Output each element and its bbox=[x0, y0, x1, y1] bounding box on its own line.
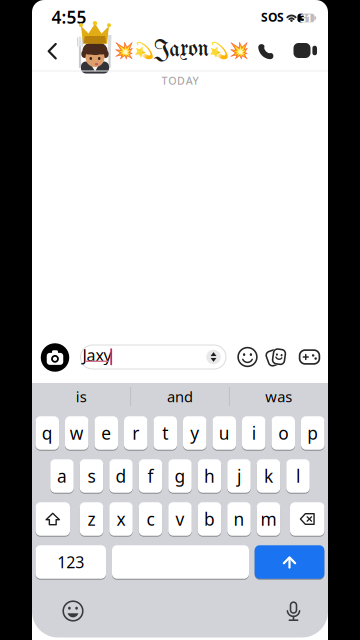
button[interactable]: r bbox=[124, 416, 147, 451]
staticText: and bbox=[167, 387, 193, 406]
button[interactable]: o bbox=[271, 416, 295, 451]
staticText: q bbox=[42, 421, 53, 444]
button[interactable]: Video call bbox=[293, 43, 317, 58]
button[interactable]: p bbox=[301, 416, 324, 451]
button[interactable]: j bbox=[227, 459, 251, 494]
button[interactable]: f bbox=[139, 459, 162, 494]
staticText: j bbox=[237, 464, 241, 487]
button[interactable]: h bbox=[198, 459, 221, 494]
button[interactable]: Emoji bbox=[62, 600, 83, 621]
staticText: 31 bbox=[300, 11, 312, 25]
staticText: p bbox=[307, 421, 318, 444]
staticText: a bbox=[57, 464, 67, 487]
button[interactable]: z bbox=[80, 502, 103, 537]
staticText: 123 bbox=[57, 551, 84, 573]
button[interactable]: More options bbox=[206, 350, 221, 364]
staticText: m bbox=[260, 507, 276, 530]
button[interactable]: y bbox=[183, 416, 206, 451]
button[interactable]: Dictation bbox=[287, 601, 300, 621]
staticText: v bbox=[175, 507, 184, 530]
button[interactable]: Profile bbox=[72, 21, 118, 72]
staticText: r bbox=[132, 421, 139, 444]
button[interactable]: Delete bbox=[290, 502, 324, 537]
button[interactable]: g bbox=[168, 459, 192, 494]
button[interactable]: t bbox=[153, 416, 177, 451]
staticText: Jaxy bbox=[82, 344, 111, 366]
staticText: 4:55 bbox=[51, 5, 86, 28]
button[interactable]: and bbox=[135, 383, 225, 409]
button[interactable]: Games bbox=[299, 349, 320, 365]
button[interactable]: a bbox=[50, 459, 74, 494]
staticText: e bbox=[101, 421, 111, 444]
staticText: 💥💫Jaxon💫💥 bbox=[113, 39, 248, 61]
staticText: was bbox=[265, 387, 292, 406]
button[interactable]: w bbox=[65, 416, 88, 451]
button[interactable]: Space bbox=[112, 545, 249, 580]
staticText: d bbox=[115, 464, 126, 487]
staticText: t bbox=[162, 421, 168, 444]
button[interactable]: Camera bbox=[41, 343, 69, 372]
staticText: h bbox=[204, 464, 215, 487]
button[interactable]: s bbox=[80, 459, 103, 494]
button[interactable]: Back bbox=[47, 43, 57, 60]
button[interactable]: n bbox=[227, 502, 251, 537]
button[interactable]: e bbox=[94, 416, 118, 451]
button[interactable]: u bbox=[212, 416, 236, 451]
staticText: c bbox=[146, 507, 154, 530]
button[interactable]: was bbox=[234, 383, 324, 409]
staticText: l bbox=[296, 464, 300, 487]
staticText: g bbox=[174, 464, 185, 487]
staticText: s bbox=[87, 464, 95, 487]
button[interactable]: m bbox=[257, 502, 280, 537]
button[interactable]: 123 bbox=[35, 545, 106, 580]
button[interactable]: l bbox=[286, 459, 310, 494]
staticText: u bbox=[219, 421, 230, 444]
button[interactable]: i bbox=[242, 416, 265, 451]
button[interactable]: Emoji bbox=[237, 347, 257, 367]
staticText: SOS bbox=[261, 9, 284, 25]
staticText: n bbox=[233, 507, 244, 530]
button[interactable]: Send bbox=[255, 545, 324, 580]
button[interactable]: d bbox=[109, 459, 133, 494]
staticText: f bbox=[147, 464, 153, 487]
staticText: w bbox=[70, 421, 84, 444]
staticText: o bbox=[278, 421, 288, 444]
button[interactable]: v bbox=[168, 502, 192, 537]
staticText: TODAY bbox=[161, 73, 199, 88]
staticText: i bbox=[252, 421, 256, 444]
button[interactable]: Shift bbox=[35, 502, 70, 537]
button[interactable]: q bbox=[35, 416, 59, 451]
button[interactable]: Stickers bbox=[266, 346, 287, 367]
button[interactable]: x bbox=[109, 502, 133, 537]
button[interactable]: c bbox=[139, 502, 162, 537]
button[interactable]: k bbox=[257, 459, 280, 494]
staticText: is bbox=[76, 387, 87, 406]
staticText: y bbox=[190, 421, 199, 444]
staticText: k bbox=[264, 464, 273, 487]
staticText: z bbox=[87, 507, 95, 530]
staticText: b bbox=[204, 507, 215, 530]
button[interactable]: Message bbox=[80, 344, 226, 369]
button[interactable]: Audio call bbox=[258, 42, 275, 59]
staticText: x bbox=[116, 507, 125, 530]
button[interactable]: is bbox=[36, 383, 126, 409]
button[interactable]: b bbox=[198, 502, 221, 537]
